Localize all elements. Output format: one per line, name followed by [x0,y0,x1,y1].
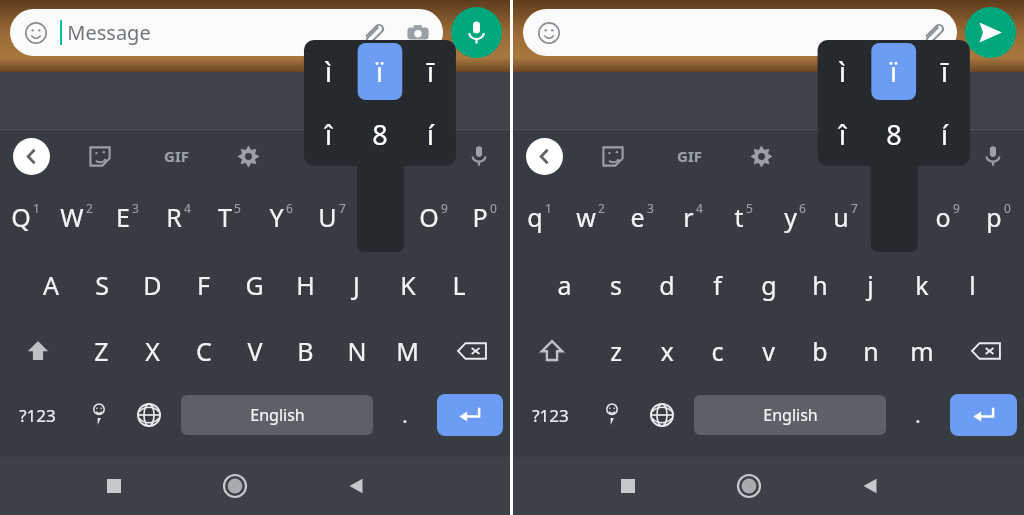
button[interactable]: m [896,318,947,384]
button[interactable]: Emoji and comma [74,384,124,446]
button[interactable]: 8 [354,103,405,166]
button[interactable]: u [820,182,871,252]
button[interactable]: L [433,252,484,318]
button[interactable]: p [973,182,1024,252]
button[interactable]: F [178,252,229,318]
button[interactable]: î [303,103,354,166]
button[interactable]: Emoji [523,9,957,56]
button[interactable]: C [178,318,229,384]
button[interactable]: Shift [0,318,76,384]
button[interactable]: Back [13,138,50,175]
button[interactable]: e [616,182,667,252]
button[interactable]: J [331,252,382,318]
button[interactable]: í [405,103,456,166]
button[interactable]: Attach file [357,18,387,48]
button[interactable]: T [204,182,255,252]
button[interactable]: Back [336,466,376,506]
button[interactable]: GIF [668,139,710,173]
button[interactable]: r [667,182,718,252]
button[interactable]: ?123 [513,384,587,446]
button[interactable]: g [743,252,794,318]
button[interactable]: M [382,318,433,384]
button[interactable]: Send [965,7,1016,58]
button[interactable]: Recents [608,466,648,506]
button[interactable]: ï [868,40,919,103]
button[interactable]: k [896,252,947,318]
button[interactable]: Record voice message [451,7,502,58]
button[interactable]: d [641,252,692,318]
button[interactable] [357,182,408,252]
button[interactable]: S [76,252,127,318]
button[interactable]: ī [919,40,970,103]
button[interactable]: y [769,182,820,252]
button[interactable]: O [408,182,459,252]
button[interactable]: Voice input [462,139,496,173]
button[interactable]: w [565,182,616,252]
button[interactable]: f [692,252,743,318]
button[interactable]: N [331,318,382,384]
button[interactable]: c [692,318,743,384]
button[interactable]: K [382,252,433,318]
button[interactable]: P [459,182,510,252]
button[interactable]: English [694,395,886,435]
button[interactable]: Back [850,466,890,506]
button[interactable]: Stickers [596,139,630,173]
button[interactable]: ì [817,40,868,103]
button[interactable]: . [380,384,430,446]
button[interactable] [871,182,922,252]
button[interactable]: v [743,318,794,384]
button[interactable]: Enter [437,394,503,436]
button[interactable]: B [280,318,331,384]
button[interactable]: Recents [94,466,134,506]
button[interactable]: X [127,318,178,384]
button[interactable]: Settings [231,139,265,173]
button[interactable]: Settings [744,139,778,173]
button[interactable]: ì [303,40,354,103]
button[interactable]: Y [255,182,306,252]
button[interactable]: Backspace [947,318,1024,384]
button[interactable]: 8 [868,103,919,166]
button[interactable]: Emoji [22,19,50,47]
button[interactable]: b [794,318,845,384]
button[interactable]: H [280,252,331,318]
button[interactable]: h [794,252,845,318]
button[interactable]: a [539,252,590,318]
button[interactable]: t [718,182,769,252]
button[interactable]: Home [729,466,769,506]
button[interactable]: English [181,395,373,435]
button[interactable]: s [590,252,641,318]
button[interactable]: o [922,182,973,252]
button[interactable]: D [127,252,178,318]
button[interactable]: Home [215,466,255,506]
button[interactable]: Stickers [83,139,117,173]
button[interactable]: U [306,182,357,252]
button[interactable]: R [153,182,204,252]
button[interactable]: . [893,384,943,446]
button[interactable]: Shift [513,318,590,384]
button[interactable]: x [641,318,692,384]
button[interactable]: n [845,318,896,384]
button[interactable]: Back [526,138,563,175]
button[interactable]: Emoji [535,19,563,47]
button[interactable]: Q [0,182,51,252]
button[interactable]: j [845,252,896,318]
button[interactable]: ?123 [0,384,74,446]
button[interactable]: E [102,182,153,252]
button[interactable]: V [229,318,280,384]
button[interactable]: ï [354,40,405,103]
button[interactable]: A [25,252,76,318]
button[interactable]: Change language [124,384,174,446]
button[interactable]: Emoji and comma [587,384,637,446]
button[interactable]: G [229,252,280,318]
button[interactable]: Emoji [10,9,443,56]
button[interactable]: W [51,182,102,252]
button[interactable]: Attach file [917,18,947,48]
button[interactable]: Camera [403,18,433,48]
button[interactable]: Z [76,318,127,384]
button[interactable]: í [919,103,970,166]
button[interactable]: z [590,318,641,384]
button[interactable]: Backspace [433,318,510,384]
button[interactable]: Voice input [976,139,1010,173]
button[interactable]: l [947,252,998,318]
button[interactable]: î [817,103,868,166]
